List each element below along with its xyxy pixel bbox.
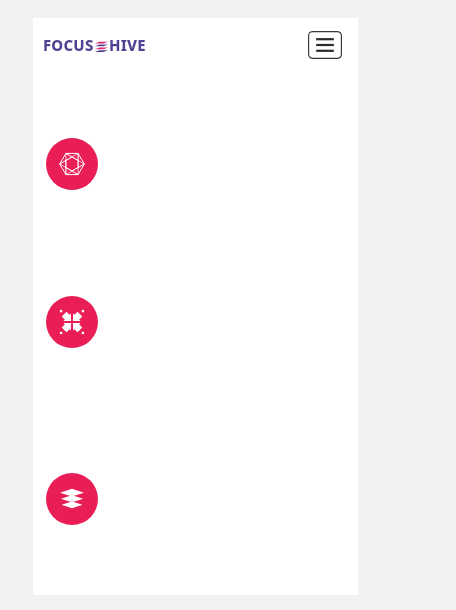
button[interactable]: Network: [46, 138, 98, 190]
button[interactable]: Layers: [46, 473, 98, 525]
button[interactable]: FOCUS: [43, 35, 146, 55]
button[interactable]: Open navigation menu: [308, 31, 342, 59]
staticText: FOCUS: [43, 35, 94, 55]
button[interactable]: Compress: [46, 296, 98, 348]
staticText: HIVE: [109, 35, 146, 55]
